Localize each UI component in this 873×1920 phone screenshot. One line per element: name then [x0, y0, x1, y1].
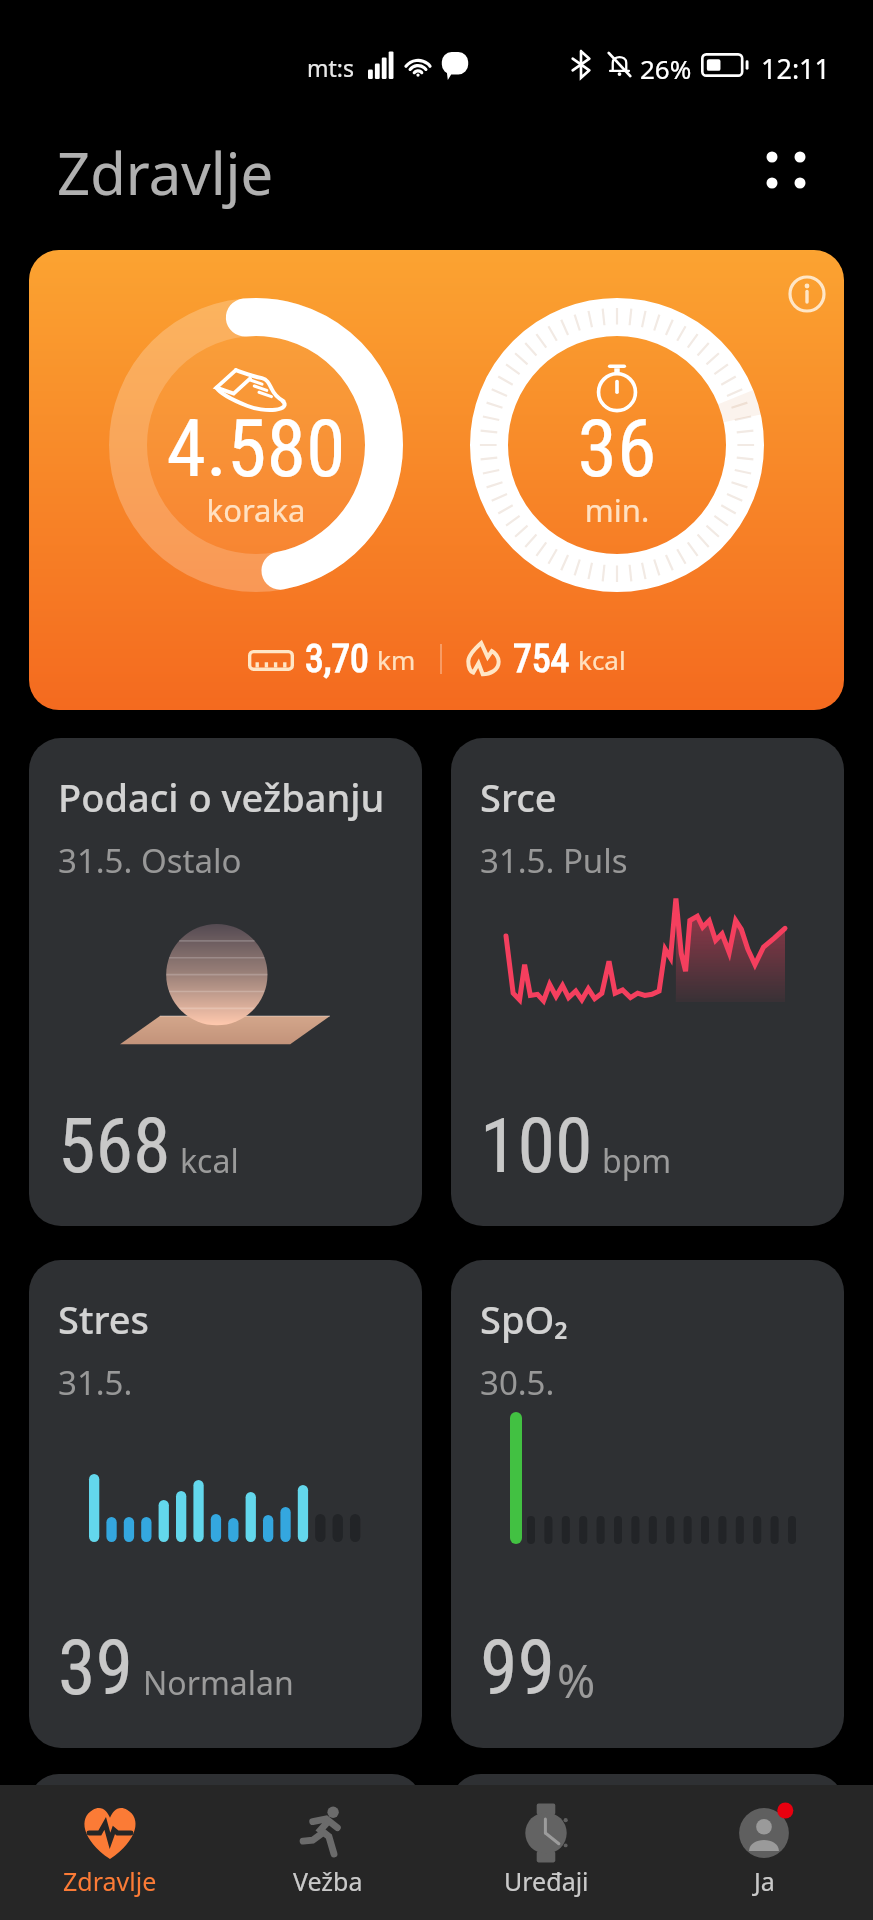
staticText: bpm [602, 1139, 672, 1183]
staticText: 99 [480, 1623, 556, 1712]
staticText: 30.5. [480, 1360, 555, 1405]
staticText: Ja [754, 1864, 775, 1898]
button[interactable]: Zdravlje [0, 1785, 219, 1920]
button[interactable] [451, 1774, 844, 1834]
staticText: 4.580 [106, 402, 406, 496]
staticText: Podaci o vežbanju [58, 771, 385, 823]
button[interactable]: Info [29, 250, 844, 710]
staticText: Vežba [293, 1864, 363, 1898]
staticText: 31.5. Ostalo [58, 838, 242, 883]
staticText: Srce [480, 771, 557, 823]
staticText: 26% [640, 51, 692, 86]
button[interactable]: Uređaji [437, 1785, 655, 1920]
staticText: Zdravlje [57, 133, 274, 212]
button[interactable]: Info [779, 266, 835, 322]
staticText: 39 [58, 1623, 134, 1712]
staticText: mt:s [307, 52, 354, 83]
staticText: 754 [513, 637, 570, 682]
staticText: 3,70 [305, 637, 369, 682]
staticText: Normalan [143, 1661, 294, 1705]
button[interactable]: Srce [451, 738, 844, 1226]
staticText: 36 [467, 402, 767, 496]
staticText: Zdravlje [63, 1864, 157, 1898]
button[interactable]: Ja [655, 1785, 873, 1920]
staticText: kcal [180, 1139, 239, 1183]
staticText: % [557, 1649, 596, 1712]
button[interactable]: Stres [29, 1260, 422, 1748]
staticText: koraka [106, 489, 406, 531]
button[interactable] [29, 1774, 422, 1834]
staticText: 31.5. [58, 1360, 133, 1405]
button[interactable]: Podaci o vežbanju [29, 738, 422, 1226]
staticText: km [377, 642, 416, 677]
staticText: SpO₂ [480, 1293, 568, 1345]
staticText: 12:11 [761, 50, 831, 87]
button[interactable]: SpO₂ [451, 1260, 844, 1748]
staticText: min. [467, 489, 767, 531]
staticText: Stres [58, 1293, 150, 1345]
staticText: 568 [58, 1101, 171, 1190]
staticText: kcal [578, 642, 626, 677]
button[interactable]: More options [757, 141, 815, 199]
staticText: Uređaji [504, 1864, 589, 1898]
staticText: 31.5. Puls [480, 838, 628, 883]
button[interactable]: Vežba [219, 1785, 437, 1920]
staticText: 100 [480, 1101, 593, 1190]
